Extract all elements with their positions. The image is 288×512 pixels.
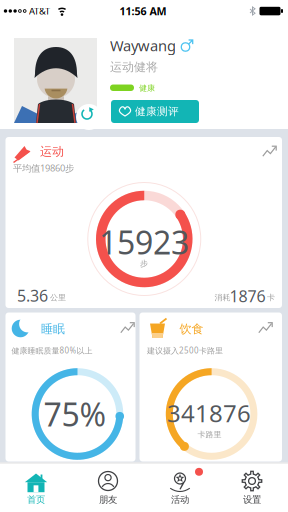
button[interactable]: 查看趋势图: [120, 321, 135, 334]
staticText: 运动健将: [110, 60, 158, 74]
staticText: 公里: [50, 293, 66, 302]
staticText: 饮食: [179, 322, 203, 336]
button[interactable]: 查看趋势图: [258, 321, 273, 334]
button[interactable]: 刷新: [76, 103, 102, 129]
staticText: 首页: [27, 494, 45, 505]
staticText: 设置: [243, 494, 261, 505]
staticText: 建议摄入2500卡路里: [147, 345, 223, 356]
staticText: 健康测评: [135, 105, 179, 118]
staticText: 15923: [99, 221, 189, 263]
staticText: 活动: [171, 494, 189, 505]
staticText: 卡: [267, 293, 275, 302]
staticText: AT&T: [29, 5, 50, 17]
staticText: 5.36: [17, 285, 48, 306]
staticText: 健康: [139, 83, 155, 93]
staticText: 1876: [229, 285, 265, 307]
staticText: 步: [140, 259, 148, 268]
staticText: 平均值19860步: [13, 162, 74, 174]
staticText: 消耗: [214, 293, 230, 302]
staticText: 卡路里: [197, 430, 221, 439]
button[interactable]: 查看趋势图: [262, 145, 277, 158]
staticText: Waywang: [110, 36, 176, 55]
button[interactable]: 首页: [0, 462, 72, 512]
staticText: 341876: [167, 397, 251, 429]
button[interactable]: 朋友: [72, 462, 144, 512]
staticText: 75%: [43, 393, 106, 435]
staticText: 朋友: [99, 494, 117, 505]
staticText: 睡眠: [41, 322, 65, 336]
staticText: 健康睡眠质量80%以上: [11, 345, 92, 356]
staticText: 运动: [40, 144, 64, 159]
button[interactable]: 健康测评: [111, 100, 199, 123]
staticText: 11:56 AM: [119, 4, 166, 18]
button[interactable]: 活动: [144, 462, 216, 512]
button[interactable]: 设置: [216, 462, 288, 512]
